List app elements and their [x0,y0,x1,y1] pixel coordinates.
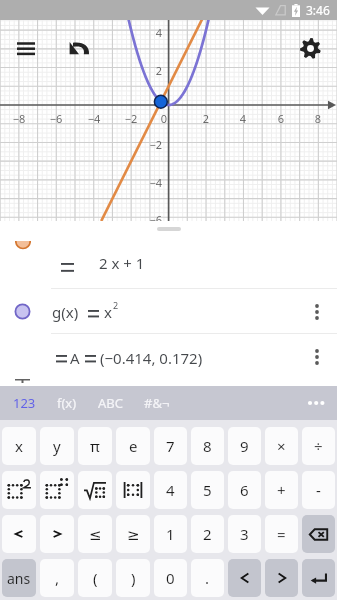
staticText: 6 [240,480,249,500]
staticText: 2 [140,63,162,78]
button[interactable]: 123 [8,388,41,418]
staticText: 3:46 [306,2,330,18]
button[interactable]: Settings [293,31,327,65]
button[interactable]: 6 [228,471,261,509]
staticText: ABC [98,394,123,412]
staticText: −4 [140,175,162,190]
button[interactable]: Backspace [302,515,335,553]
button[interactable]: ans [2,559,36,597]
button[interactable]: ( [78,559,112,597]
staticText: #&¬ [144,394,170,412]
button[interactable]: x [2,427,36,465]
staticText: 4 [140,25,162,40]
button[interactable]: 4 [154,471,187,509]
button[interactable]: Undo [62,31,96,65]
button[interactable]: A [0,334,337,379]
button[interactable]: 7 [154,427,187,465]
staticText: 8 [203,436,212,456]
button[interactable]: 2 [191,515,224,553]
staticText: 2 x + 1 [99,253,145,273]
staticText: 3 [240,524,249,544]
button[interactable]: y [40,427,74,465]
button[interactable]: 5 [191,471,224,509]
staticText: ≥ [127,526,140,543]
button[interactable]: More options [305,300,329,324]
staticText: 1 [166,524,175,544]
staticText: 2 [203,524,212,544]
button[interactable]: ≤ [78,515,112,553]
button[interactable] [116,471,150,509]
button[interactable] [0,379,337,386]
staticText: = [277,524,286,544]
button[interactable]: Enter [302,559,335,597]
staticText: ≤ [89,526,102,543]
other: Right [53,530,61,538]
staticText: 7 [166,436,175,456]
staticText: π [90,436,100,456]
staticText: × [277,436,286,456]
button[interactable]: , [40,559,74,597]
button[interactable]: - [302,471,335,509]
staticText: ( [93,568,98,588]
staticText: −2 [120,111,142,126]
staticText: 9 [240,436,249,456]
staticText: (−0.414, 0.172) [100,348,203,368]
button[interactable]: × [265,427,298,465]
staticText: x [104,302,112,322]
button[interactable] [78,471,112,509]
staticText: g(x) [52,302,79,322]
staticText: −8 [8,111,30,126]
button[interactable]: f(x) [52,388,82,418]
staticText: 4 [232,111,254,126]
staticText: f(x) [57,394,77,412]
button[interactable]: More [302,389,330,417]
button[interactable]: 2 x + 1 [0,221,337,289]
staticText: 5 [203,480,212,500]
button[interactable]: ) [116,559,150,597]
button[interactable]: . [191,559,224,597]
button[interactable]: ABC [93,388,128,418]
staticText: , [55,568,60,588]
button[interactable]: 8 [191,427,224,465]
button[interactable]: e [116,427,150,465]
button[interactable]: Menu [9,32,43,66]
staticText: −6 [45,111,67,126]
other: Move left [241,572,249,584]
staticText: y [53,436,61,456]
button[interactable]: g(x) [0,289,337,334]
staticText: −4 [83,111,105,126]
button[interactable] [40,471,74,509]
staticText: . [205,568,210,588]
button[interactable]: + [265,471,298,509]
other: Enter [310,572,327,585]
staticText: ans [7,569,31,588]
staticText: 123 [13,394,36,412]
staticText: - [316,480,321,500]
button[interactable]: 3 [228,515,261,553]
staticText: 4 [166,480,175,500]
staticText: 8 [307,111,329,126]
button[interactable]: ≥ [116,515,150,553]
button[interactable]: More options [305,345,329,369]
other: Left [15,530,23,538]
button[interactable]: #&¬ [139,388,175,418]
button[interactable]: 1 [154,515,187,553]
button[interactable]: Move left [228,559,261,597]
button[interactable]: = [265,515,298,553]
staticText: 6 [270,111,292,126]
button[interactable]: π [78,427,112,465]
button[interactable] [2,471,36,509]
button[interactable]: Right [40,515,74,553]
staticText: e [129,436,138,456]
staticText: 2 [113,299,119,311]
button[interactable]: ÷ [302,427,335,465]
staticText: A [70,348,80,368]
button[interactable]: 0 [154,559,187,597]
button[interactable]: 9 [228,427,261,465]
staticText: 2 [195,111,217,126]
staticText: 0 [145,111,167,126]
button[interactable]: Move right [265,559,298,597]
other: Move right [278,572,286,584]
staticText: + [277,480,286,500]
button[interactable]: Left [2,515,36,553]
